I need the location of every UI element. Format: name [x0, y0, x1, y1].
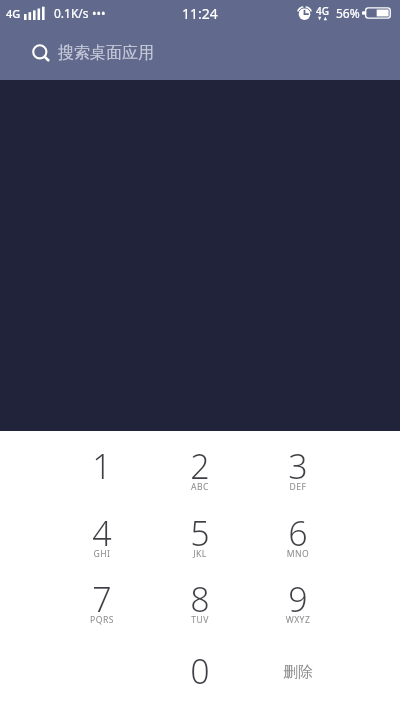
button[interactable]: 3: [249, 436, 347, 506]
button[interactable]: 5: [151, 503, 249, 573]
staticText: ABC: [151, 481, 249, 493]
staticText: 0: [151, 648, 249, 694]
staticText: 56%: [336, 5, 360, 21]
button[interactable]: Search: [0, 26, 400, 80]
button[interactable]: 8: [151, 569, 249, 639]
staticText: 8: [151, 576, 249, 622]
staticText: 3: [249, 443, 347, 489]
staticText: 搜索桌面应用: [58, 43, 154, 63]
staticText: 7: [53, 576, 151, 622]
staticText: GHI: [53, 548, 151, 560]
staticText: PQRS: [53, 614, 151, 626]
staticText: 4G: [316, 4, 329, 18]
staticText: •••: [92, 5, 106, 21]
staticText: 11:24: [182, 4, 218, 23]
staticText: 5: [151, 510, 249, 556]
button[interactable]: 删除: [249, 636, 347, 706]
button[interactable]: 1: [53, 436, 151, 506]
staticText: 1: [53, 443, 151, 489]
button[interactable]: 7: [53, 569, 151, 639]
button[interactable]: 9: [249, 569, 347, 639]
button[interactable]: 0: [151, 636, 249, 706]
staticText: WXYZ: [249, 614, 347, 626]
staticText: 6: [249, 510, 347, 556]
button[interactable]: 6: [249, 503, 347, 573]
staticText: MNO: [249, 548, 347, 560]
staticText: 0.1K/s: [54, 5, 89, 21]
staticText: 删除: [249, 663, 347, 682]
button[interactable]: 4: [53, 503, 151, 573]
other: Search: [30, 42, 52, 64]
staticText: JKL: [151, 548, 249, 560]
staticText: DEF: [249, 481, 347, 493]
button[interactable]: 2: [151, 436, 249, 506]
staticText: TUV: [151, 614, 249, 626]
staticText: 4: [53, 510, 151, 556]
staticText: 9: [249, 576, 347, 622]
staticText: 2: [151, 443, 249, 489]
staticText: 4G: [6, 6, 21, 21]
